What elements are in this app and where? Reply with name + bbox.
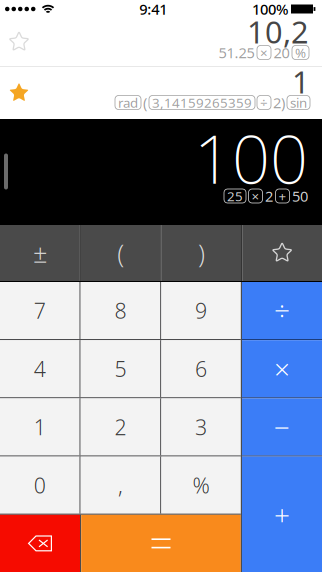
staticText: 100% xyxy=(252,0,288,19)
staticText: ( xyxy=(117,236,124,270)
staticText: % xyxy=(193,471,210,499)
button[interactable]: 10,2 xyxy=(0,18,322,66)
staticText: 1 xyxy=(34,413,46,441)
button[interactable]: 1 xyxy=(0,398,79,455)
staticText: + xyxy=(274,496,290,533)
staticText: 7 xyxy=(34,296,46,325)
staticText: 1 xyxy=(292,61,310,102)
button[interactable]: 5 xyxy=(81,340,160,397)
button[interactable]: % xyxy=(161,457,241,514)
staticText: 3 xyxy=(195,413,207,441)
staticText: 25 xyxy=(227,187,243,205)
staticText: 20 xyxy=(273,43,289,62)
staticText: ( xyxy=(143,93,147,112)
button[interactable]: 4 xyxy=(0,340,79,397)
button[interactable]: , xyxy=(81,457,160,514)
button[interactable]: 7 xyxy=(0,282,79,339)
staticText: 50 xyxy=(292,186,308,206)
staticText: rad xyxy=(118,94,138,111)
staticText: × xyxy=(251,187,259,205)
staticText: ) xyxy=(198,236,205,270)
button[interactable]: 2 xyxy=(81,398,160,455)
staticText: ± xyxy=(33,236,47,270)
staticText: 6 xyxy=(195,354,207,383)
staticText: 9 xyxy=(195,296,207,325)
button[interactable]: 8 xyxy=(81,282,160,339)
staticText: % xyxy=(295,44,306,61)
button[interactable]: ) xyxy=(161,225,241,281)
staticText: 4 xyxy=(34,354,46,383)
staticText: ÷ xyxy=(274,292,290,329)
staticText: 2 xyxy=(114,413,126,441)
button[interactable]: 9 xyxy=(161,282,241,339)
staticText: 2 xyxy=(265,186,273,206)
staticText: 8 xyxy=(114,296,126,325)
staticText: 9:41 xyxy=(139,0,167,19)
button[interactable]: ( xyxy=(81,225,161,281)
staticText: 100 xyxy=(194,114,308,202)
staticText: 0 xyxy=(34,471,46,499)
staticText: + xyxy=(278,187,286,205)
button[interactable]: Delete xyxy=(0,515,80,572)
staticText: × xyxy=(260,44,268,61)
button[interactable]: 1 xyxy=(0,67,322,119)
button[interactable]: × xyxy=(242,340,322,397)
staticText: 5 xyxy=(114,354,126,383)
staticText: ÷ xyxy=(260,94,268,111)
button[interactable]: + xyxy=(242,457,322,572)
button[interactable]: 3 xyxy=(161,398,241,455)
button[interactable]: ÷ xyxy=(242,282,322,339)
staticText: 2) xyxy=(273,93,285,112)
staticText: − xyxy=(274,408,290,445)
staticText: 10,2 xyxy=(247,11,309,52)
staticText: , xyxy=(118,471,123,499)
button[interactable]: 0 xyxy=(0,457,79,514)
button[interactable]: Equals xyxy=(81,515,241,572)
staticText: sin xyxy=(290,94,307,111)
staticText: 3,14159265359 xyxy=(152,94,252,111)
button[interactable]: − xyxy=(242,398,322,455)
button[interactable]: ± xyxy=(0,225,80,281)
staticText: 51.25 xyxy=(218,43,254,62)
button[interactable]: Favourite xyxy=(242,225,322,281)
staticText: × xyxy=(274,350,290,387)
button[interactable]: 6 xyxy=(161,340,241,397)
